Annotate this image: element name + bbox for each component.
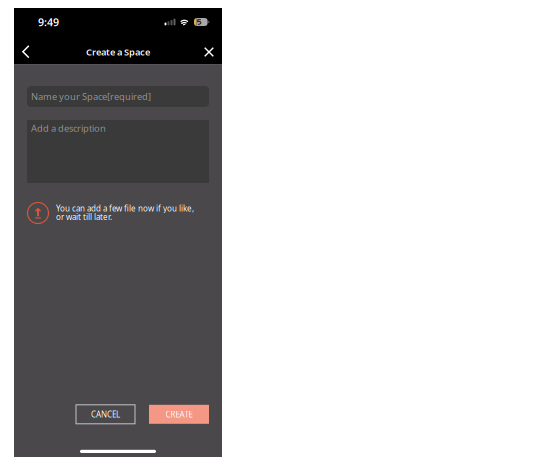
staticText: or wait till later.	[56, 212, 112, 222]
staticText: Create a Space	[86, 46, 150, 58]
staticText: 9:49	[38, 15, 59, 29]
staticText: Add a description	[31, 122, 106, 134]
button[interactable]: Name your Space[required]	[27, 86, 209, 107]
staticText: CREATE	[165, 409, 192, 420]
button[interactable]: Add a description	[27, 120, 209, 183]
staticText: CANCEL	[91, 409, 120, 420]
button[interactable]: CREATE	[149, 405, 209, 424]
staticText: You can add a few file now if you like,	[56, 203, 194, 214]
button[interactable]: Back	[15, 39, 37, 64]
button[interactable]: CANCEL	[76, 405, 135, 424]
button[interactable]: Close	[198, 39, 220, 64]
staticText: Name your Space[required]	[31, 90, 151, 103]
